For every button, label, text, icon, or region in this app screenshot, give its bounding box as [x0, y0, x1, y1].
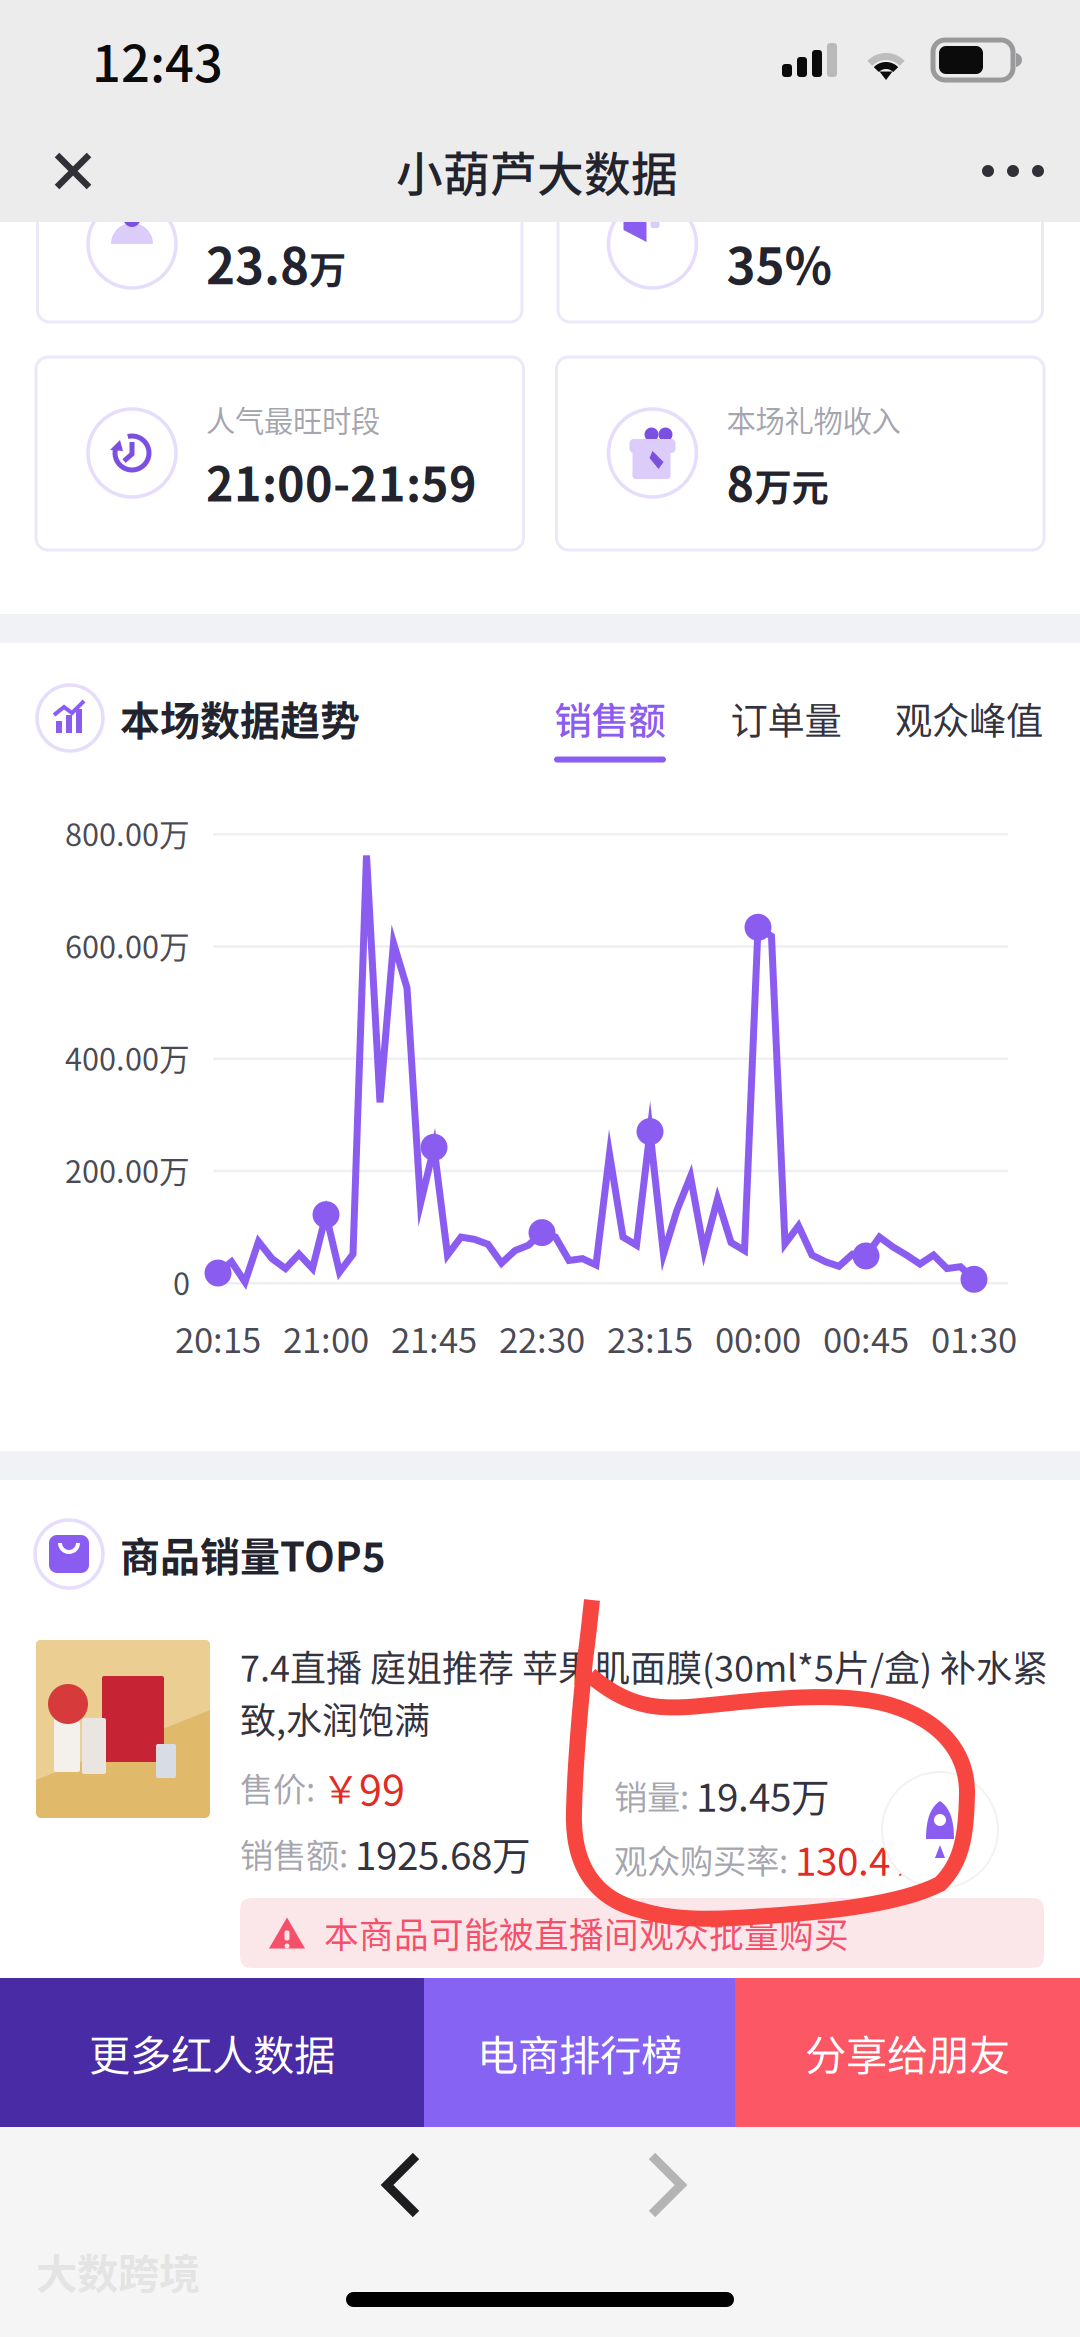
button[interactable]: Scroll to top: [883, 1773, 997, 1887]
staticText: 01:30: [931, 1313, 1017, 1363]
staticText: 800.00万: [65, 811, 190, 855]
staticText: 售价:: [240, 1763, 322, 1811]
button[interactable]: 销售额: [548, 673, 672, 763]
staticText: 20:15: [175, 1313, 261, 1363]
staticText: 21:45: [391, 1313, 477, 1363]
staticText: 22:30: [499, 1313, 585, 1363]
staticText: 35%: [726, 227, 832, 298]
staticText: 23:15: [607, 1313, 693, 1363]
button[interactable]: Close: [0, 120, 122, 222]
staticText: 观众购买率:: [614, 1835, 795, 1883]
staticText: 小葫芦大数据: [396, 137, 678, 205]
staticText: 本场礼物收入: [726, 398, 900, 440]
staticText: 130.4%: [795, 1831, 926, 1887]
staticText: 商品销量TOP5: [120, 1525, 386, 1583]
staticText: ￥: [322, 1760, 359, 1814]
button[interactable]: More options: [952, 120, 1080, 222]
staticText: 大数跨境: [36, 2241, 200, 2301]
staticText: 销售额:: [240, 1829, 355, 1877]
staticText: 19.45万: [696, 1767, 830, 1823]
staticText: 7.4直播 庭姐推荐 苹果肌面膜(30ml*5片/盒) 补水紧致,水润饱满: [240, 1640, 1048, 1744]
staticText: 21:00-21:59: [206, 447, 477, 515]
staticText: 00:45: [823, 1313, 909, 1363]
staticText: 99: [359, 1757, 405, 1817]
staticText: 200.00万: [65, 1147, 190, 1192]
button[interactable]: 分享给朋友: [735, 1978, 1080, 2127]
staticText: 更多红人数据: [89, 2023, 335, 2082]
button[interactable]: 电商排行榜: [424, 1978, 735, 2127]
staticText: 订单量: [730, 691, 841, 746]
staticText: 1925.68万: [355, 1825, 531, 1881]
staticText: 21:00: [283, 1313, 369, 1363]
staticText: 400.00万: [65, 1035, 190, 1080]
button[interactable]: 订单量: [672, 673, 842, 763]
staticText: 人气最旺时段: [206, 398, 380, 440]
staticText: 分享给朋友: [805, 2023, 1010, 2082]
staticText: 电商排行榜: [477, 2023, 682, 2082]
staticText: 销售额: [554, 691, 665, 746]
staticText: 8: [726, 447, 754, 515]
button[interactable]: 更多红人数据: [0, 1978, 424, 2127]
staticText: 12:43: [92, 23, 223, 97]
staticText: 万: [309, 241, 346, 295]
staticText: 本场数据趋势: [120, 689, 360, 747]
staticText: 0: [173, 1260, 190, 1304]
button[interactable]: Back: [356, 2127, 448, 2243]
staticText: 销量:: [614, 1771, 696, 1819]
button[interactable]: Forward: [620, 2127, 712, 2243]
staticText: 23.8: [206, 227, 309, 298]
staticText: 万元: [754, 458, 828, 512]
staticText: 00:00: [715, 1313, 801, 1363]
staticText: 600.00万: [65, 923, 190, 967]
staticText: 本商品可能被直播间观众批量购买: [324, 1908, 849, 1958]
staticText: 观众峰值: [895, 691, 1043, 746]
button[interactable]: 观众峰值: [842, 673, 1044, 763]
